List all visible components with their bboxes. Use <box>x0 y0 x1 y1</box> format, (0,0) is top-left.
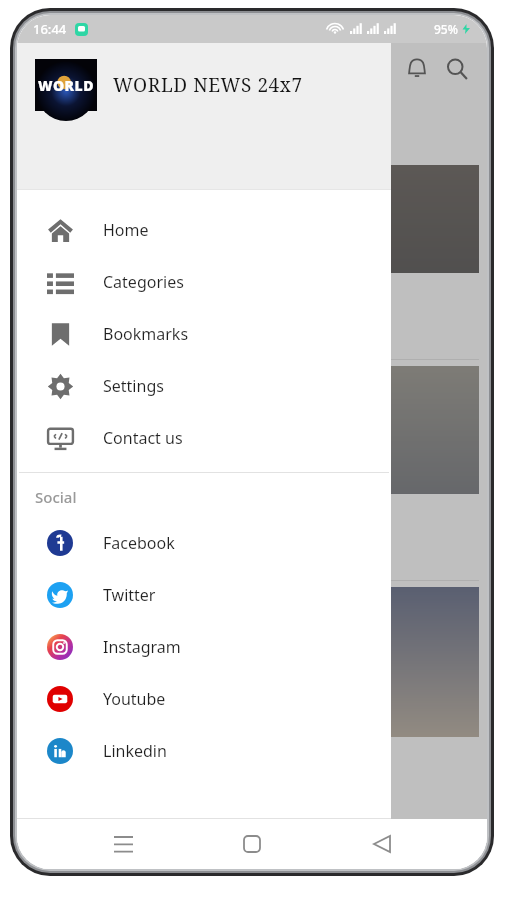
button[interactable]: Notifications <box>397 49 437 89</box>
staticText: 95% <box>434 21 458 37</box>
button[interactable]: Recent apps <box>99 820 147 868</box>
staticText: Home <box>103 219 149 241</box>
staticText: Instagram <box>103 636 181 658</box>
button[interactable]: Share <box>81 327 111 357</box>
staticText: Social <box>35 487 77 507</box>
staticText: orth <box>25 500 60 522</box>
staticText: Settings <box>103 375 164 397</box>
staticText: SBI <box>25 743 51 765</box>
staticText: Launc... <box>25 522 87 544</box>
button[interactable]: Bookmark <box>25 548 55 578</box>
staticText: Categories <box>103 271 184 293</box>
staticText: WORLD <box>38 76 94 95</box>
button[interactable]: Bookmark <box>25 327 55 357</box>
staticText: Contact us <box>103 427 183 449</box>
button[interactable]: Back <box>358 820 406 868</box>
button[interactable]: Youtube <box>17 673 391 725</box>
button[interactable]: Twitter <box>17 569 391 621</box>
button[interactable]: Bookmarks <box>17 308 391 360</box>
staticText: Youtube <box>103 688 166 710</box>
button[interactable]: Share <box>81 548 111 578</box>
button[interactable]: Home <box>17 204 391 256</box>
button[interactable]: Home <box>228 820 276 868</box>
staticText: Linkedin <box>103 740 167 762</box>
button[interactable]: Facebook <box>17 517 391 569</box>
staticText: Business <box>44 95 127 121</box>
staticText: Facebook <box>103 532 175 554</box>
button[interactable]: Instagram <box>17 621 391 673</box>
staticText: WORLD NEWS 24x7 <box>113 72 303 98</box>
button[interactable]: orth <box>25 366 479 581</box>
staticText: Twitter <box>103 584 156 606</box>
staticText: Bookmarks <box>103 323 189 345</box>
button[interactable]: Linkedin <box>17 725 391 777</box>
staticText: Modi <box>25 279 65 301</box>
staticText: 16:44 <box>33 20 67 38</box>
button[interactable]: Settings <box>17 360 391 412</box>
button[interactable]: Search <box>437 49 477 89</box>
button[interactable]: Contact us <box>17 412 391 464</box>
button[interactable]: Modi <box>25 165 479 360</box>
button[interactable]: SBI <box>25 587 479 765</box>
button[interactable]: Categories <box>17 256 391 308</box>
